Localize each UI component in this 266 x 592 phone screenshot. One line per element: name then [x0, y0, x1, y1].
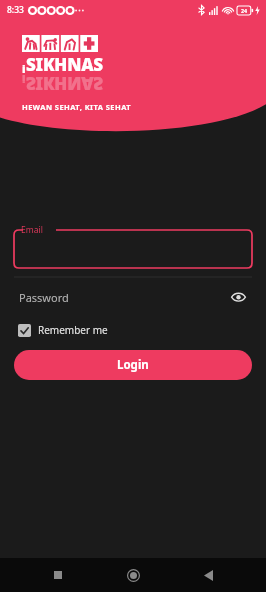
button[interactable]: Email [14, 230, 252, 268]
staticText: Password [19, 290, 69, 305]
staticText: HEWAN SEHAT, KITA SEHAT [22, 102, 132, 112]
staticText: i [22, 72, 26, 87]
staticText: SIKHNAS [26, 53, 103, 76]
button[interactable]: Show password [227, 286, 249, 308]
button[interactable]: Back [191, 558, 225, 592]
staticText: Email [21, 224, 43, 236]
staticText: SIKHNAS [26, 72, 103, 95]
button[interactable]: Recent apps [41, 558, 75, 592]
staticText: 8:33 [7, 4, 24, 16]
button[interactable]: Home [116, 558, 150, 592]
staticText: i [22, 61, 26, 76]
staticText: Login [117, 357, 149, 373]
staticText: Remember me [38, 323, 108, 337]
button[interactable]: Remember me [18, 323, 108, 337]
staticText: 24 [241, 7, 248, 14]
button[interactable]: Login [14, 350, 252, 380]
button[interactable]: Password [14, 276, 252, 312]
